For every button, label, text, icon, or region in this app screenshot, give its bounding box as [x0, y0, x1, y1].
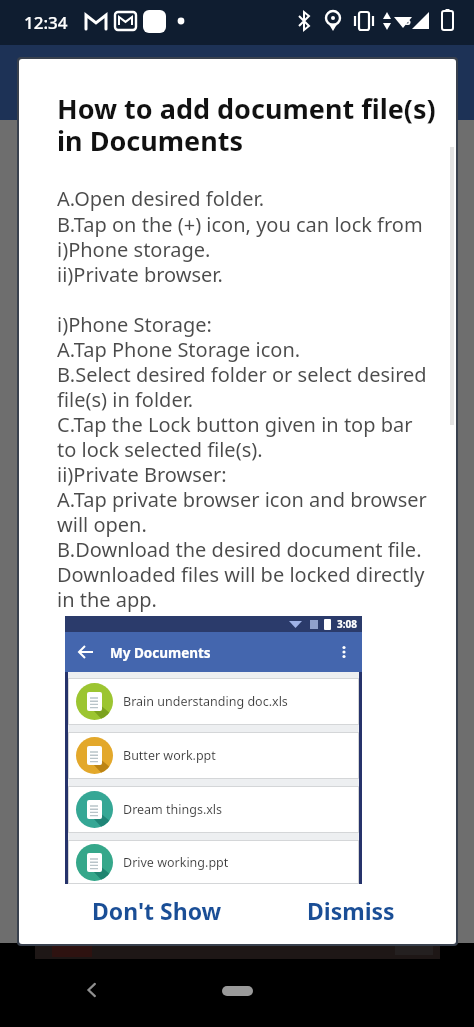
button[interactable]: Don't Show — [79, 887, 234, 933]
staticText: 12:34 — [24, 11, 68, 34]
staticText: Dream things.xls — [123, 801, 223, 818]
button[interactable]: Butter work.ppt — [68, 732, 359, 779]
staticText: A.Open desired folder. B.Tap on the (+) … — [57, 185, 427, 612]
button[interactable]: Drive working.ppt — [68, 840, 359, 884]
button[interactable]: Brain understanding doc.xls — [68, 678, 359, 725]
button[interactable]: Dream things.xls — [68, 786, 359, 833]
staticText: Don't Show — [92, 895, 222, 926]
staticText: Drive working.ppt — [123, 854, 229, 871]
staticText: Butter work.ppt — [123, 747, 216, 764]
staticText: My Documents — [110, 644, 211, 662]
button[interactable] — [222, 986, 253, 996]
staticText: 5 — [405, 14, 411, 28]
staticText: Brain understanding doc.xls — [123, 693, 288, 710]
button[interactable]: Dismiss — [291, 887, 411, 933]
staticText: Dismiss — [307, 895, 395, 926]
staticText: How to add document file(s) in Documents — [57, 90, 436, 159]
staticText: 3:08 — [337, 617, 357, 631]
